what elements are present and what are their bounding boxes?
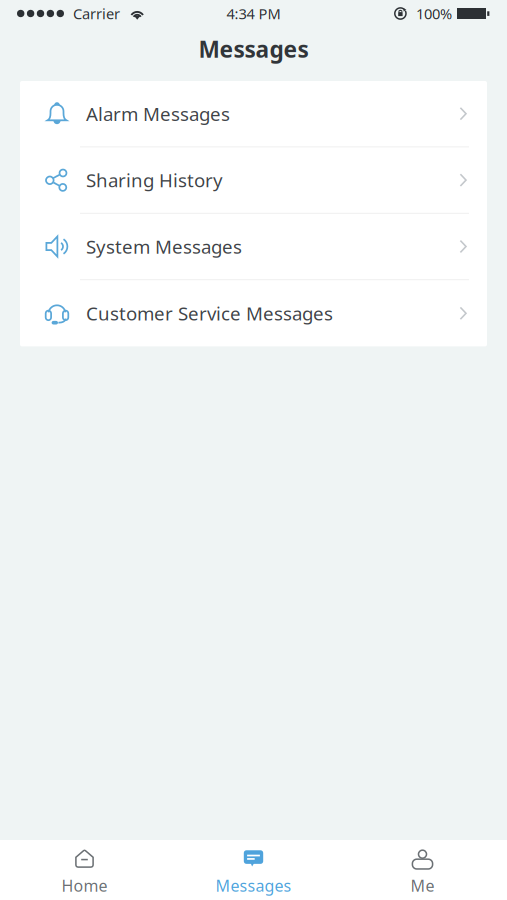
staticText: Messages [215, 875, 291, 896]
staticText: 100% [416, 4, 452, 23]
staticText: Alarm Messages [86, 101, 230, 126]
staticText: 4:34 PM [226, 4, 280, 23]
button[interactable]: Sharing History [20, 147, 487, 214]
staticText: Me [410, 875, 434, 896]
staticText: Customer Service Messages [86, 301, 333, 326]
button[interactable]: Alarm Messages [20, 81, 487, 147]
button[interactable]: Me [338, 837, 507, 900]
staticText: System Messages [86, 234, 242, 259]
button[interactable]: Home [0, 837, 169, 900]
button[interactable]: System Messages [20, 214, 487, 280]
staticText: Home [61, 875, 107, 896]
button[interactable]: Messages [169, 837, 338, 900]
staticText: Sharing History [86, 168, 223, 192]
button[interactable]: Customer Service Messages [20, 280, 487, 346]
staticText: Carrier [73, 4, 120, 23]
staticText: Messages [198, 34, 308, 64]
